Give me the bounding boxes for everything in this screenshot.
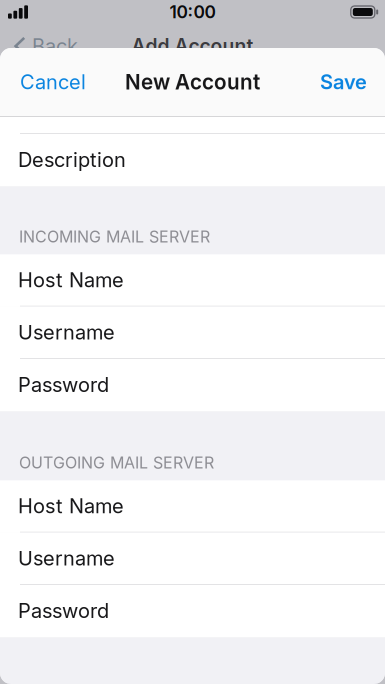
staticText: Username	[18, 546, 115, 570]
staticText: Password	[18, 598, 109, 623]
button[interactable]: Host Name	[0, 254, 385, 307]
staticText: Host Name	[18, 494, 124, 518]
staticText: Save	[320, 70, 367, 94]
button[interactable]: Username	[0, 307, 385, 359]
staticText: Host Name	[18, 268, 124, 292]
staticText: OUTGOING MAIL SERVER	[19, 453, 214, 472]
staticText: INCOMING MAIL SERVER	[19, 227, 210, 246]
staticText: Back	[32, 34, 78, 58]
staticText: New Account	[125, 69, 260, 94]
staticText: Username	[18, 320, 115, 344]
staticText: Add Account	[131, 34, 253, 58]
button[interactable]: Save	[308, 48, 385, 116]
button[interactable]: Cancel	[0, 48, 98, 116]
button[interactable]: Password	[0, 359, 385, 411]
button[interactable]: Password	[0, 585, 385, 637]
button[interactable]: Host Name	[0, 480, 385, 533]
staticText: Password	[18, 373, 109, 397]
staticText: Description	[18, 148, 126, 172]
staticText: Cancel	[20, 70, 86, 94]
staticText: 10:00	[169, 1, 215, 22]
button[interactable]: Username	[0, 533, 385, 585]
button[interactable]: Description	[0, 134, 385, 186]
button[interactable]: Back	[0, 26, 78, 66]
